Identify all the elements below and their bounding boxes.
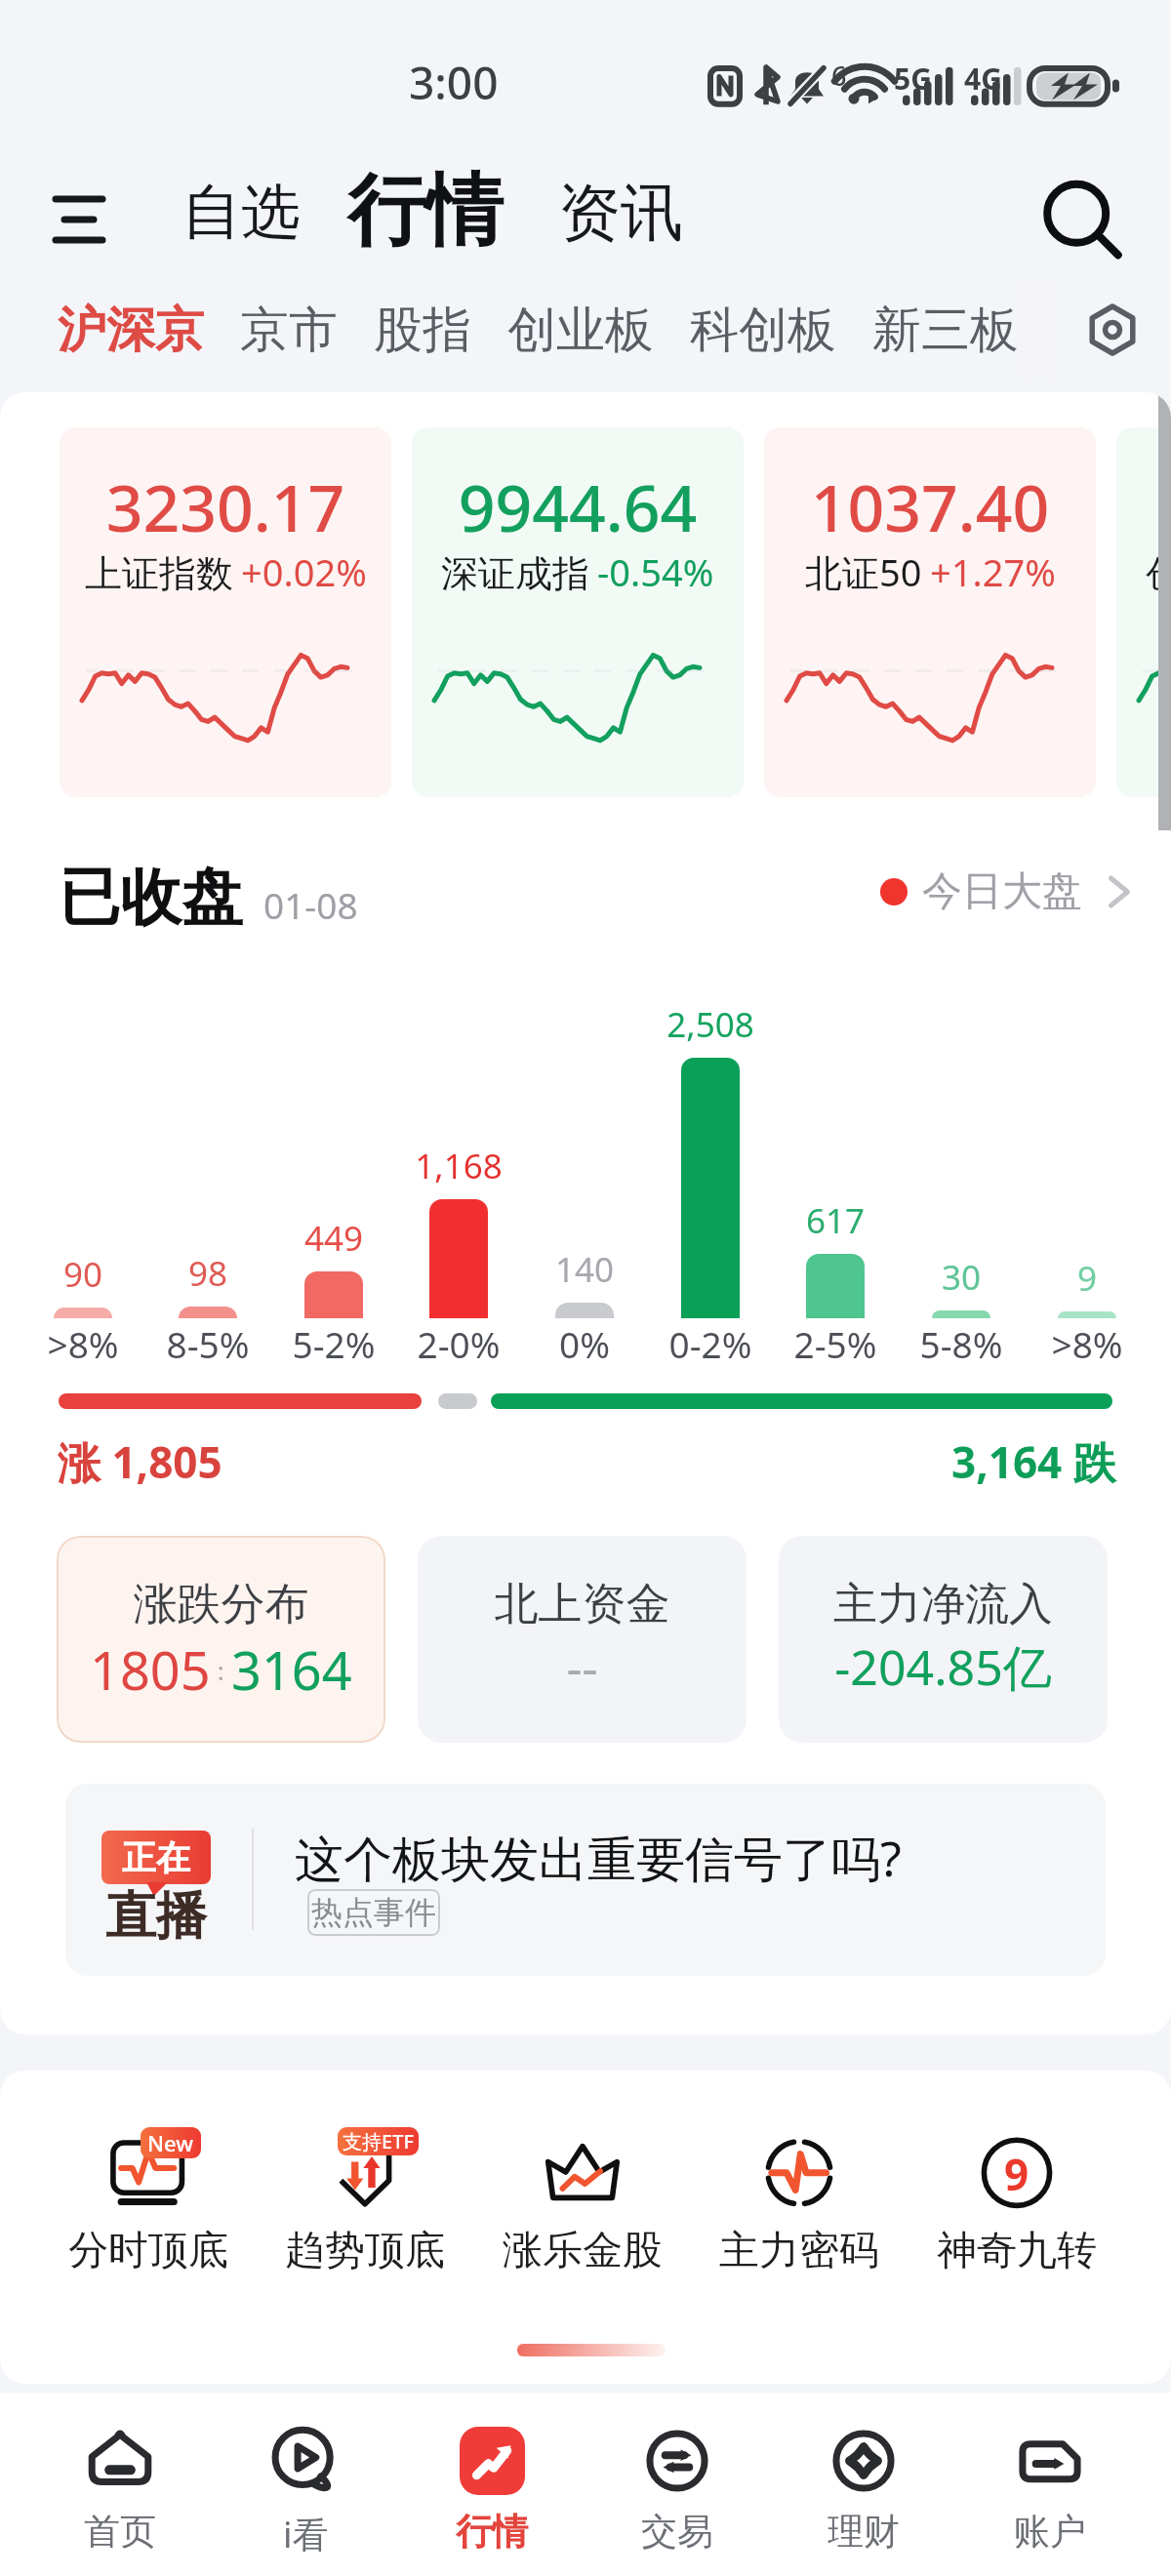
button[interactable]: 京市 (240, 281, 338, 379)
staticText: 9944.64 (412, 463, 744, 550)
button[interactable]: 617 (773, 1197, 898, 1318)
staticText: 1037.40 (764, 463, 1096, 550)
button[interactable]: 主力净流入 (779, 1536, 1108, 1743)
staticText: 账户 (1014, 2509, 1086, 2555)
staticText: 98 (145, 1250, 270, 1297)
staticText: 2,508 (648, 1001, 773, 1048)
staticText: 股指 (374, 300, 471, 361)
button[interactable]: 账户 (957, 2393, 1143, 2576)
staticText: 2-5% (773, 1319, 898, 1368)
button[interactable]: 9 (914, 2125, 1119, 2320)
button[interactable]: 沪深京 (58, 281, 204, 379)
button[interactable]: 涨乐金股 (480, 2125, 685, 2320)
staticText: -204.85亿 (779, 1633, 1108, 1700)
button[interactable]: 3230.17 (60, 427, 391, 797)
button[interactable]: 9 (1025, 1255, 1150, 1318)
button[interactable]: 449 (271, 1215, 396, 1318)
staticText: 热点事件 (311, 1893, 436, 1932)
staticText: 行情 (456, 2509, 528, 2555)
button[interactable]: 行情 (399, 2393, 585, 2576)
staticText: 今日大盘 (922, 866, 1082, 917)
staticText: 北上资金 (418, 1577, 747, 1632)
staticText: : (211, 1653, 231, 1687)
staticText: New (147, 2128, 194, 2157)
staticText: 交易 (641, 2509, 713, 2555)
staticText: 涨跌分布 (57, 1577, 385, 1632)
staticText: 科创板 (690, 300, 836, 361)
staticText: 2-0% (396, 1319, 521, 1368)
staticText: 6 (831, 58, 847, 94)
button[interactable]: Menu (37, 178, 121, 262)
button[interactable]: 140 (522, 1246, 647, 1318)
staticText: 1805 (90, 1633, 211, 1706)
staticText: 8-5% (145, 1319, 270, 1368)
staticText: 3230.17 (60, 463, 391, 550)
staticText: 神奇九转 (937, 2226, 1097, 2276)
button[interactable]: 正在 (65, 1784, 1106, 1976)
staticText: 主力净流入 (779, 1577, 1108, 1632)
staticText: 创业板 (507, 300, 654, 361)
staticText: 0-2% (648, 1319, 773, 1368)
staticText: 自选 (182, 175, 301, 250)
button[interactable]: 90 (20, 1251, 145, 1318)
staticText: 京市 (240, 300, 338, 361)
button[interactable]: New (46, 2125, 251, 2320)
button[interactable]: 98 (145, 1250, 270, 1318)
staticText: 3:00 (409, 52, 499, 113)
staticText: 30 (899, 1254, 1024, 1301)
staticText: 分时顶底 (68, 2226, 228, 2276)
staticText: 5G (894, 59, 932, 99)
staticText: 涨 1,805 (58, 1432, 222, 1491)
staticText: 资讯 (558, 174, 683, 253)
button[interactable]: 新三板 (872, 281, 1019, 379)
button[interactable]: 涨跌分布 (57, 1536, 385, 1743)
staticText: >8% (20, 1319, 145, 1368)
staticText: -0.54% (597, 546, 714, 597)
button[interactable]: 理财 (771, 2393, 956, 2576)
staticText: 北证50 (805, 546, 922, 597)
button[interactable]: 2031.49 (1116, 427, 1171, 797)
staticText: 涨乐金股 (503, 2226, 663, 2276)
staticText: 趋势顶底 (285, 2226, 445, 2276)
button[interactable]: 科创板 (690, 281, 836, 379)
staticText: 行情 (347, 162, 504, 261)
staticText: 9 (1025, 1255, 1150, 1302)
staticText: +1.27% (930, 546, 1056, 597)
button[interactable]: Search (1032, 172, 1130, 269)
button[interactable]: 北上资金 (418, 1536, 747, 1743)
button[interactable]: 1037.40 (764, 427, 1096, 797)
button[interactable]: 9944.64 (412, 427, 744, 797)
button[interactable]: Settings (1081, 299, 1144, 361)
staticText: 这个板块发出重要信号了吗? (295, 1825, 902, 1891)
staticText: >8% (1025, 1319, 1150, 1368)
staticText: 上证指数 (85, 550, 233, 597)
staticText: 617 (773, 1197, 898, 1244)
staticText: 449 (271, 1215, 396, 1262)
button[interactable]: 行情 (338, 152, 515, 273)
button[interactable]: 股指 (374, 281, 471, 379)
button[interactable]: 自选 (172, 158, 303, 267)
staticText: 01-08 (263, 880, 358, 929)
staticText: i看 (283, 2509, 329, 2558)
button[interactable]: 1,168 (396, 1143, 521, 1318)
button[interactable]: 支持ETF (262, 2125, 467, 2320)
staticText: 2031.49 (1116, 463, 1171, 550)
staticText: 5-8% (899, 1319, 1024, 1368)
button[interactable]: 今日大盘 (880, 866, 1137, 917)
button[interactable]: 交易 (585, 2393, 770, 2576)
staticText: 0% (522, 1319, 647, 1368)
staticText: 沪深京 (58, 300, 204, 361)
staticText: 创业板指 (1146, 550, 1171, 597)
staticText: 9 (1004, 2145, 1030, 2203)
button[interactable]: 主力密码 (697, 2125, 902, 2320)
button[interactable]: 2,508 (648, 1001, 773, 1318)
button[interactable]: 资讯 (548, 158, 687, 267)
button[interactable]: 30 (899, 1254, 1024, 1318)
staticText: 首页 (84, 2509, 156, 2555)
button[interactable]: 创业板 (507, 281, 654, 379)
button[interactable]: i看 (213, 2393, 398, 2576)
button[interactable]: 首页 (27, 2393, 213, 2576)
staticText: 5-2% (271, 1319, 396, 1368)
staticText: 140 (522, 1246, 647, 1293)
staticText: 理财 (828, 2509, 900, 2555)
